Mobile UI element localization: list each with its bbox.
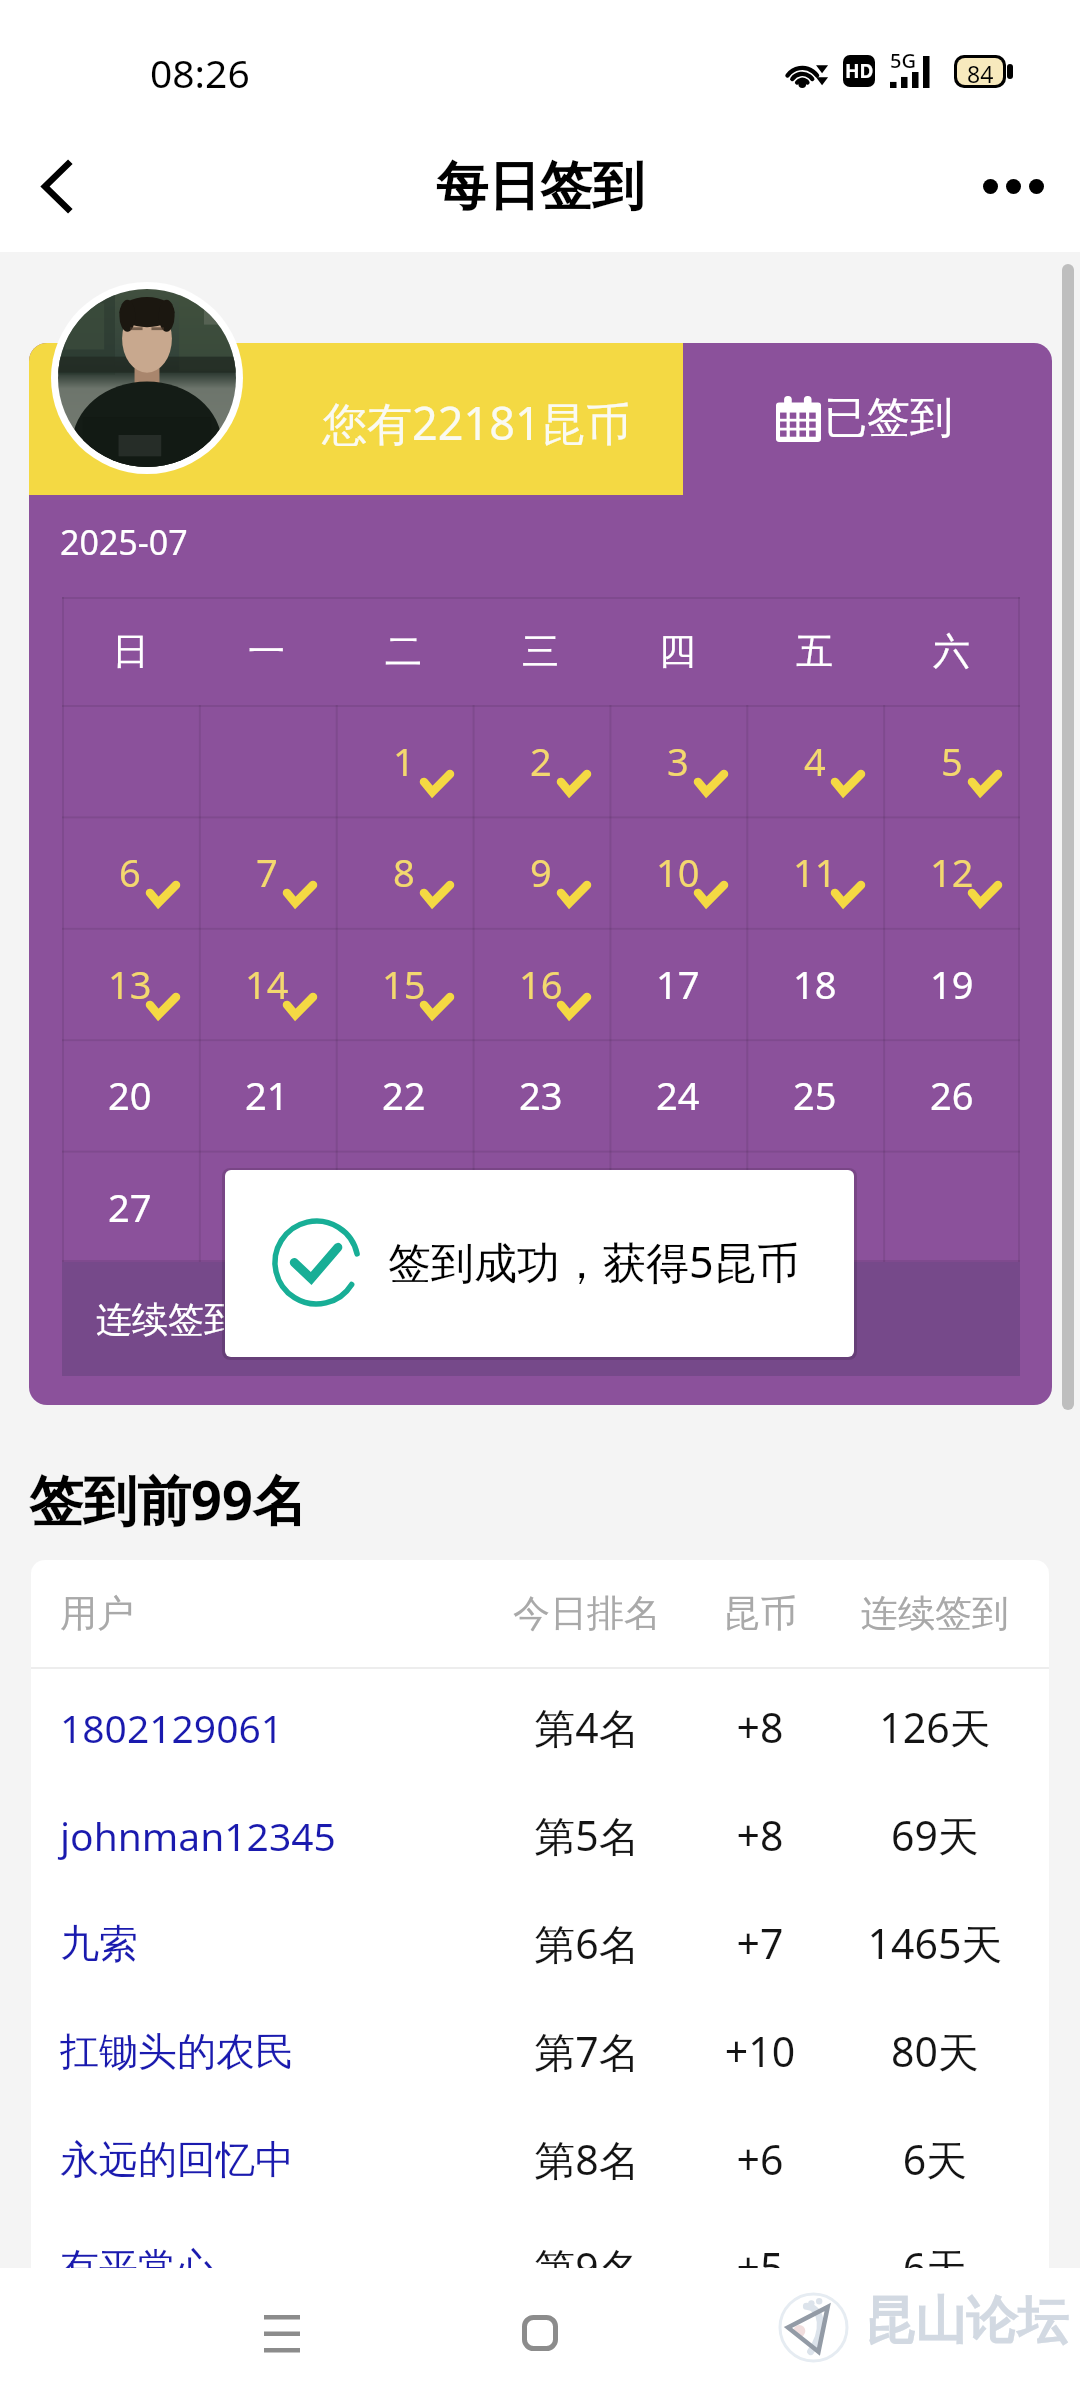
staticText: 16 xyxy=(519,958,563,1010)
staticText: 84 xyxy=(967,58,994,85)
staticText: 3 xyxy=(667,735,689,787)
button[interactable]: 25 xyxy=(746,1039,883,1150)
button[interactable]: 6 xyxy=(62,816,198,927)
button[interactable]: 5 xyxy=(883,705,1020,816)
staticText: 二 xyxy=(385,628,422,675)
button[interactable]: 4 xyxy=(746,705,883,816)
staticText: 25 xyxy=(793,1069,837,1121)
button[interactable]: 10 xyxy=(609,816,746,927)
staticText: 4 xyxy=(804,735,826,787)
staticText: 23 xyxy=(519,1069,563,1121)
staticText: 20 xyxy=(108,1069,152,1121)
button[interactable]: 12 xyxy=(883,816,1020,927)
button[interactable]: 17 xyxy=(609,928,746,1039)
staticText: +5 xyxy=(693,2239,827,2268)
staticText: 永远的回忆中 xyxy=(60,2135,481,2184)
button[interactable]: 23 xyxy=(472,1039,609,1150)
button[interactable]: Back xyxy=(0,126,112,246)
button[interactable]: 24 xyxy=(609,1039,746,1150)
button[interactable] xyxy=(198,1151,335,1262)
button[interactable]: 13 xyxy=(62,928,198,1039)
staticText: 5G xyxy=(890,47,916,74)
staticText: 15 xyxy=(382,958,426,1010)
button[interactable]: Recent apps xyxy=(212,2273,352,2393)
staticText: 10 xyxy=(656,846,700,898)
button[interactable] xyxy=(609,1151,746,1262)
button[interactable]: 永远的回忆中 xyxy=(31,2105,1049,2213)
staticText: +6 xyxy=(693,2131,827,2187)
button[interactable]: 9 xyxy=(472,816,609,927)
staticText: 13 xyxy=(108,958,152,1010)
staticText: 80天 xyxy=(827,2023,1043,2079)
staticText: 扛锄头的农民 xyxy=(60,2027,481,2076)
button[interactable]: 1 xyxy=(335,705,472,816)
button[interactable]: 14 xyxy=(198,928,335,1039)
button[interactable]: 1802129061 xyxy=(31,1673,1049,1781)
button[interactable]: 已签到 xyxy=(776,391,953,447)
button[interactable]: 九索 xyxy=(31,1889,1049,1997)
button[interactable]: 27 xyxy=(62,1151,198,1262)
staticText: 27 xyxy=(108,1181,152,1233)
button[interactable]: 7 xyxy=(198,816,335,927)
staticText: 签到前99名 xyxy=(29,1462,307,1536)
button[interactable]: Home xyxy=(470,2273,610,2393)
staticText: 签到成功，获得5昆币 xyxy=(388,1232,800,1291)
button[interactable]: 22 xyxy=(335,1039,472,1150)
button[interactable]: 2 xyxy=(472,705,609,816)
staticText: 第6名 xyxy=(481,1915,693,1971)
staticText: 已签到 xyxy=(824,391,953,445)
button[interactable]: 19 xyxy=(883,928,1020,1039)
staticText: 连续签到 xyxy=(827,1590,1043,1637)
button[interactable]: 扛锄头的农民 xyxy=(31,1997,1049,2105)
staticText: +7 xyxy=(693,1915,827,1971)
staticText: 17 xyxy=(656,958,700,1010)
staticText: 8 xyxy=(393,846,415,898)
button[interactable]: 8 xyxy=(335,816,472,927)
staticText: 您有22181昆币 xyxy=(322,392,631,453)
staticText: 每日签到 xyxy=(436,154,644,220)
button[interactable]: 11 xyxy=(746,816,883,927)
staticText: 一 xyxy=(248,628,285,675)
staticText: 九索 xyxy=(60,1919,481,1968)
staticText: 126天 xyxy=(827,1699,1043,1755)
button[interactable]: 26 xyxy=(883,1039,1020,1150)
staticText: 26 xyxy=(930,1069,974,1121)
button[interactable]: User avatar xyxy=(58,289,236,467)
button[interactable] xyxy=(335,1151,472,1262)
staticText: 21 xyxy=(245,1069,289,1121)
staticText: 三 xyxy=(522,628,559,675)
staticText: 今日排名 xyxy=(481,1590,693,1637)
button[interactable]: 20 xyxy=(62,1039,198,1150)
staticText: 9 xyxy=(530,846,552,898)
button[interactable]: 3 xyxy=(609,705,746,816)
button[interactable]: 16 xyxy=(472,928,609,1039)
button[interactable] xyxy=(746,1151,883,1262)
staticText: 六 xyxy=(933,628,970,675)
button[interactable] xyxy=(472,1151,609,1262)
staticText: +10 xyxy=(693,2023,827,2079)
staticText: 第5名 xyxy=(481,1807,693,1863)
button[interactable]: 有平常心 xyxy=(31,2213,1049,2268)
staticText: 6 xyxy=(119,846,141,898)
button[interactable]: johnman12345 xyxy=(31,1781,1049,1889)
button[interactable]: 您有22181昆币 xyxy=(29,343,1052,1405)
staticText: 第4名 xyxy=(481,1699,693,1755)
staticText: 用户 xyxy=(60,1590,481,1637)
staticText: 第9名 xyxy=(481,2239,693,2268)
staticText: 11 xyxy=(793,846,837,898)
staticText: 昆山论坛 xyxy=(864,2289,1068,2353)
button[interactable] xyxy=(883,1151,1020,1262)
staticText: +8 xyxy=(693,1807,827,1863)
staticText: 5 xyxy=(941,735,963,787)
button[interactable]: 15 xyxy=(335,928,472,1039)
staticText: 18 xyxy=(793,958,837,1010)
staticText: 22 xyxy=(382,1069,426,1121)
staticText: 2025-07 xyxy=(60,519,188,565)
button[interactable]: 21 xyxy=(198,1039,335,1150)
button[interactable]: More options xyxy=(948,126,1080,246)
button[interactable]: 18 xyxy=(746,928,883,1039)
staticText: 12 xyxy=(930,846,974,898)
staticText: 69天 xyxy=(827,1807,1043,1863)
